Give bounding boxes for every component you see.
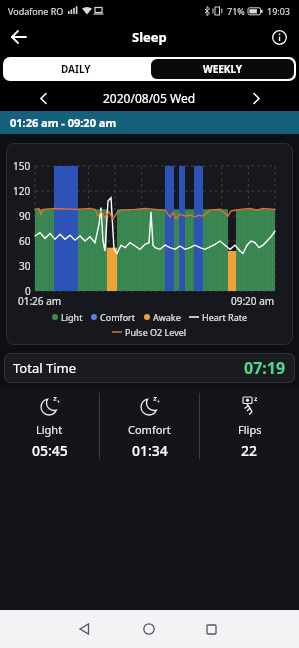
staticText: 120 <box>13 184 31 198</box>
button[interactable]: Comfort <box>100 389 199 463</box>
staticText: Awake <box>153 311 181 323</box>
staticText: 2020/08/05 Wed <box>103 90 196 106</box>
staticText: 22 <box>241 441 258 460</box>
staticText: 05:45 <box>32 441 68 460</box>
button[interactable] <box>32 87 54 109</box>
staticText: 71% <box>227 5 245 17</box>
staticText: Light <box>36 422 63 437</box>
staticText: Comfort <box>100 311 136 323</box>
staticText: WEEKLY <box>203 62 243 76</box>
button[interactable] <box>129 610 169 648</box>
staticText: Flips <box>238 422 262 437</box>
staticText: 19:03 <box>267 5 291 17</box>
button[interactable]: Light <box>0 389 99 463</box>
staticText: Light <box>61 311 83 323</box>
button[interactable] <box>267 25 291 49</box>
staticText: DAILY <box>61 62 91 76</box>
button[interactable] <box>64 610 104 648</box>
staticText: 07:19 <box>244 357 286 379</box>
staticText: Pulse O2 Level <box>125 326 187 338</box>
staticText: Total Time <box>13 359 76 377</box>
staticText: 60 <box>19 234 31 248</box>
button[interactable] <box>245 87 267 109</box>
staticText: Vodafone RO <box>8 5 64 17</box>
staticText: 30 <box>19 259 31 273</box>
button[interactable]: WEEKLY <box>151 59 294 79</box>
staticText: Comfort <box>128 422 171 437</box>
staticText: Sleep <box>132 28 167 46</box>
staticText: 01:26 am <box>18 294 62 308</box>
staticText: 09:20 am <box>231 294 275 308</box>
staticText: 01:26 am - 09:20 am <box>10 115 117 130</box>
staticText: 90 <box>19 209 31 223</box>
staticText: 01:34 <box>132 441 168 460</box>
button[interactable]: Flips <box>200 389 299 463</box>
staticText: Heart Rate <box>202 311 248 323</box>
button[interactable] <box>191 610 231 648</box>
button[interactable] <box>6 24 32 50</box>
button[interactable]: Total Time <box>4 353 295 383</box>
staticText: 0 <box>25 284 31 298</box>
staticText: 150 <box>13 159 31 173</box>
button[interactable]: DAILY <box>3 57 149 81</box>
